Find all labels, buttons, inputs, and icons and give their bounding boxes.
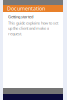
staticText: This guide explains how to set up the cl… [8, 20, 58, 36]
staticText: Getting started [8, 14, 33, 19]
staticText: Documentation [7, 5, 45, 12]
